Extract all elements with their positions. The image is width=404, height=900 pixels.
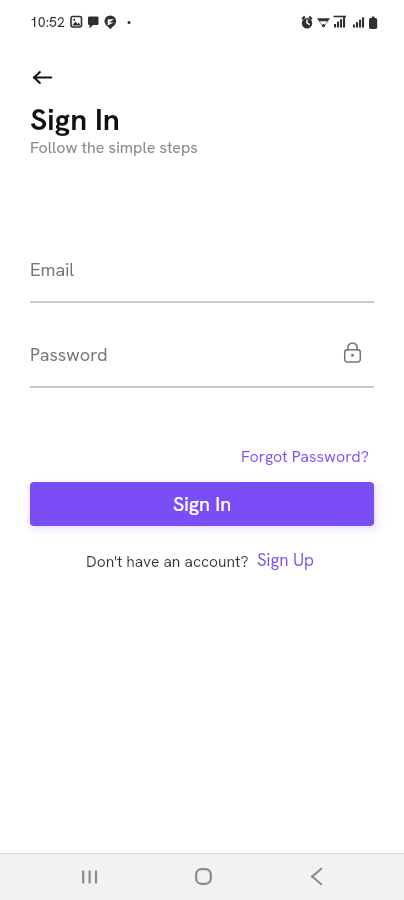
staticText: Forgot Password? — [241, 446, 369, 467]
staticText: Email — [30, 258, 74, 281]
button[interactable]: Recent apps — [66, 853, 114, 900]
staticText: Sign Up — [257, 549, 315, 571]
button[interactable]: Home — [179, 853, 227, 900]
staticText: Don't have an account? — [86, 551, 249, 571]
staticText: Sign In — [30, 100, 120, 139]
button[interactable]: Back — [22, 57, 62, 97]
staticText: 10:52 — [30, 13, 65, 31]
staticText: Password — [30, 343, 108, 366]
button[interactable]: Password — [30, 340, 374, 387]
button[interactable]: Forgot Password? — [236, 442, 374, 471]
staticText: Follow the simple steps — [30, 137, 198, 158]
button[interactable]: Email — [30, 255, 374, 302]
button[interactable]: Sign In — [30, 482, 374, 526]
button[interactable]: Show password — [340, 340, 364, 364]
button[interactable]: Sign Up — [257, 549, 315, 571]
button[interactable]: Back — [292, 853, 340, 900]
staticText: Sign In — [173, 491, 232, 517]
